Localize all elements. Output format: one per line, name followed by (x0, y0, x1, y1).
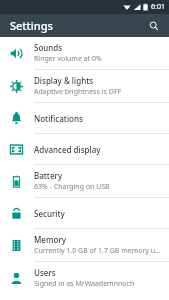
staticText: Battery (34, 170, 63, 181)
staticText: Currently 1.0 GB of 1.7 GB memory used (34, 246, 161, 256)
staticText: Sounds (34, 42, 63, 53)
button[interactable]: Notifications (0, 103, 169, 133)
staticText: Signed in as MrWaademnnoch (34, 279, 135, 289)
staticText: Display & lights (34, 75, 94, 86)
button[interactable]: Users (0, 262, 169, 294)
staticText: Adaptive brightness is OFF (34, 87, 122, 97)
staticText: Ringer volume at 0% (34, 54, 102, 64)
staticText: Users (34, 267, 56, 278)
button[interactable]: Memory (0, 229, 169, 261)
button[interactable]: Battery (0, 165, 169, 197)
staticText: 6:01 (151, 2, 165, 12)
staticText: Memory (34, 234, 67, 245)
staticText: Settings (10, 18, 53, 33)
button[interactable]: Search (145, 17, 163, 35)
staticText: Advanced display (34, 144, 101, 155)
button[interactable]: Advanced display (0, 134, 169, 164)
staticText: 63% - Charging on USB (34, 182, 110, 192)
button[interactable]: Sounds (0, 37, 169, 69)
staticText: Notifications (34, 113, 83, 124)
button[interactable]: Security (0, 198, 169, 228)
button[interactable]: Display & lights (0, 70, 169, 102)
staticText: Security (34, 208, 65, 219)
